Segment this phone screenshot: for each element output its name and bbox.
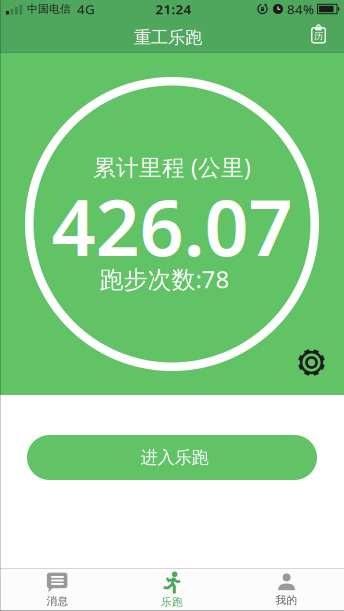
button[interactable]: 历 — [311, 27, 344, 45]
staticText: 21:24 — [155, 0, 191, 18]
staticText: 进入乐跑 — [140, 447, 208, 468]
button[interactable]: 我的 — [229, 569, 344, 611]
button[interactable] — [296, 347, 326, 377]
staticText: 跑步次数:78 — [99, 263, 229, 295]
staticText: 我的 — [276, 594, 298, 607]
button[interactable]: 乐跑 — [115, 569, 229, 611]
staticText: 4G — [77, 0, 95, 18]
staticText: 426.07 — [51, 175, 292, 277]
staticText: 累计里程 (公里) — [93, 152, 251, 182]
button[interactable]: 进入乐跑 — [27, 435, 317, 480]
staticText: 中国电信 — [27, 2, 71, 15]
staticText: 重工乐跑 — [134, 27, 202, 48]
staticText: 84% — [287, 0, 314, 18]
staticText: 历 — [314, 30, 323, 42]
button[interactable]: 消息 — [0, 569, 115, 611]
staticText: 消息 — [46, 595, 68, 608]
staticText: 乐跑 — [161, 595, 183, 608]
